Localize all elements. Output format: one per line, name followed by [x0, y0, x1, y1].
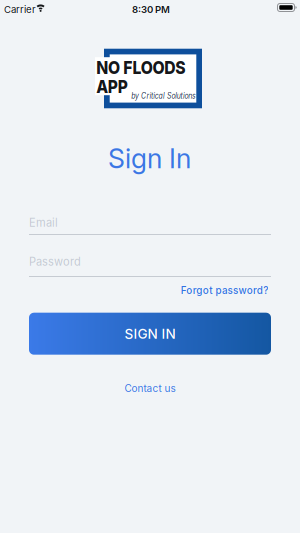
staticText: by Critical Solutions [121, 90, 206, 101]
staticText: Contact us [124, 382, 175, 394]
staticText: Email [29, 216, 58, 229]
button[interactable]: SIGN IN [29, 313, 271, 355]
staticText: 8:30 PM [132, 4, 170, 15]
button[interactable]: Contact us [124, 382, 175, 394]
staticText: APP [93, 75, 131, 98]
staticText: Forgot password? [177, 283, 273, 297]
button[interactable]: Forgot password? [177, 283, 273, 297]
staticText: Sign In [108, 142, 191, 175]
staticText: Password [29, 255, 81, 268]
staticText: NO FLOODS [88, 56, 194, 78]
staticText: Carrier [4, 4, 36, 15]
staticText: SIGN IN [124, 325, 175, 342]
